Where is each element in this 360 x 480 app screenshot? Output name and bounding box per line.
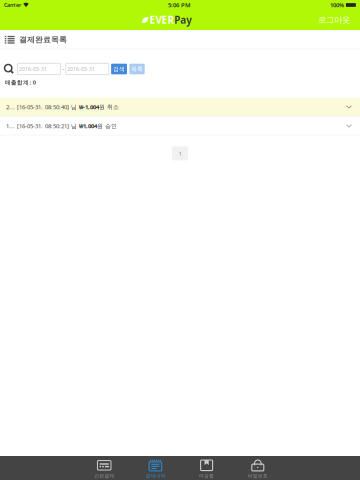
- button[interactable]: 결제내역: [129, 456, 180, 480]
- staticText: ₩1,004: [79, 122, 97, 130]
- staticText: Pay: [174, 13, 192, 27]
- button[interactable]: 간편결제: [78, 456, 129, 480]
- button[interactable]: 1... [16-05-31. 08:50:21] 님: [0, 116, 360, 135]
- staticText: 2016-05-31: [67, 65, 95, 72]
- staticText: 비밀번호: [248, 473, 268, 479]
- staticText: 검색: [113, 65, 125, 73]
- staticText: 원 승인: [97, 122, 117, 130]
- button[interactable]: 2016-05-31: [66, 63, 109, 75]
- staticText: ₩-1,004: [79, 103, 99, 111]
- staticText: 5:06 PM: [168, 1, 191, 9]
- staticText: 결제내역: [145, 473, 165, 479]
- staticText: 원 취소: [99, 103, 119, 111]
- staticText: 목록: [131, 65, 143, 73]
- staticText: 로그아웃: [318, 15, 350, 25]
- staticText: EVER: [149, 13, 173, 27]
- staticText: 2016-05-31: [19, 65, 47, 72]
- staticText: 매출합계 : 0: [5, 78, 36, 86]
- button[interactable]: 마감함: [180, 456, 231, 480]
- button[interactable]: 1: [172, 146, 188, 160]
- button[interactable]: 2... [16-05-31. 08:50:40] 님: [0, 97, 360, 116]
- staticText: 100%: [330, 1, 344, 9]
- button[interactable]: 검색: [111, 64, 127, 74]
- staticText: 1... [16-05-31. 08:50:21] 님: [6, 122, 79, 130]
- button[interactable]: 로그아웃: [313, 11, 355, 29]
- staticText: 2... [16-05-31. 08:50:40] 님: [6, 103, 79, 111]
- staticText: -: [62, 65, 64, 73]
- button[interactable]: 2016-05-31: [18, 63, 61, 75]
- staticText: 결제완료목록: [19, 35, 67, 45]
- staticText: 마감함: [199, 473, 214, 479]
- staticText: 간편결제: [94, 473, 114, 479]
- button[interactable]: 비밀번호: [231, 456, 282, 480]
- staticText: Carrier: [4, 1, 21, 9]
- button[interactable]: 목록: [129, 64, 145, 74]
- staticText: 1: [178, 149, 181, 157]
